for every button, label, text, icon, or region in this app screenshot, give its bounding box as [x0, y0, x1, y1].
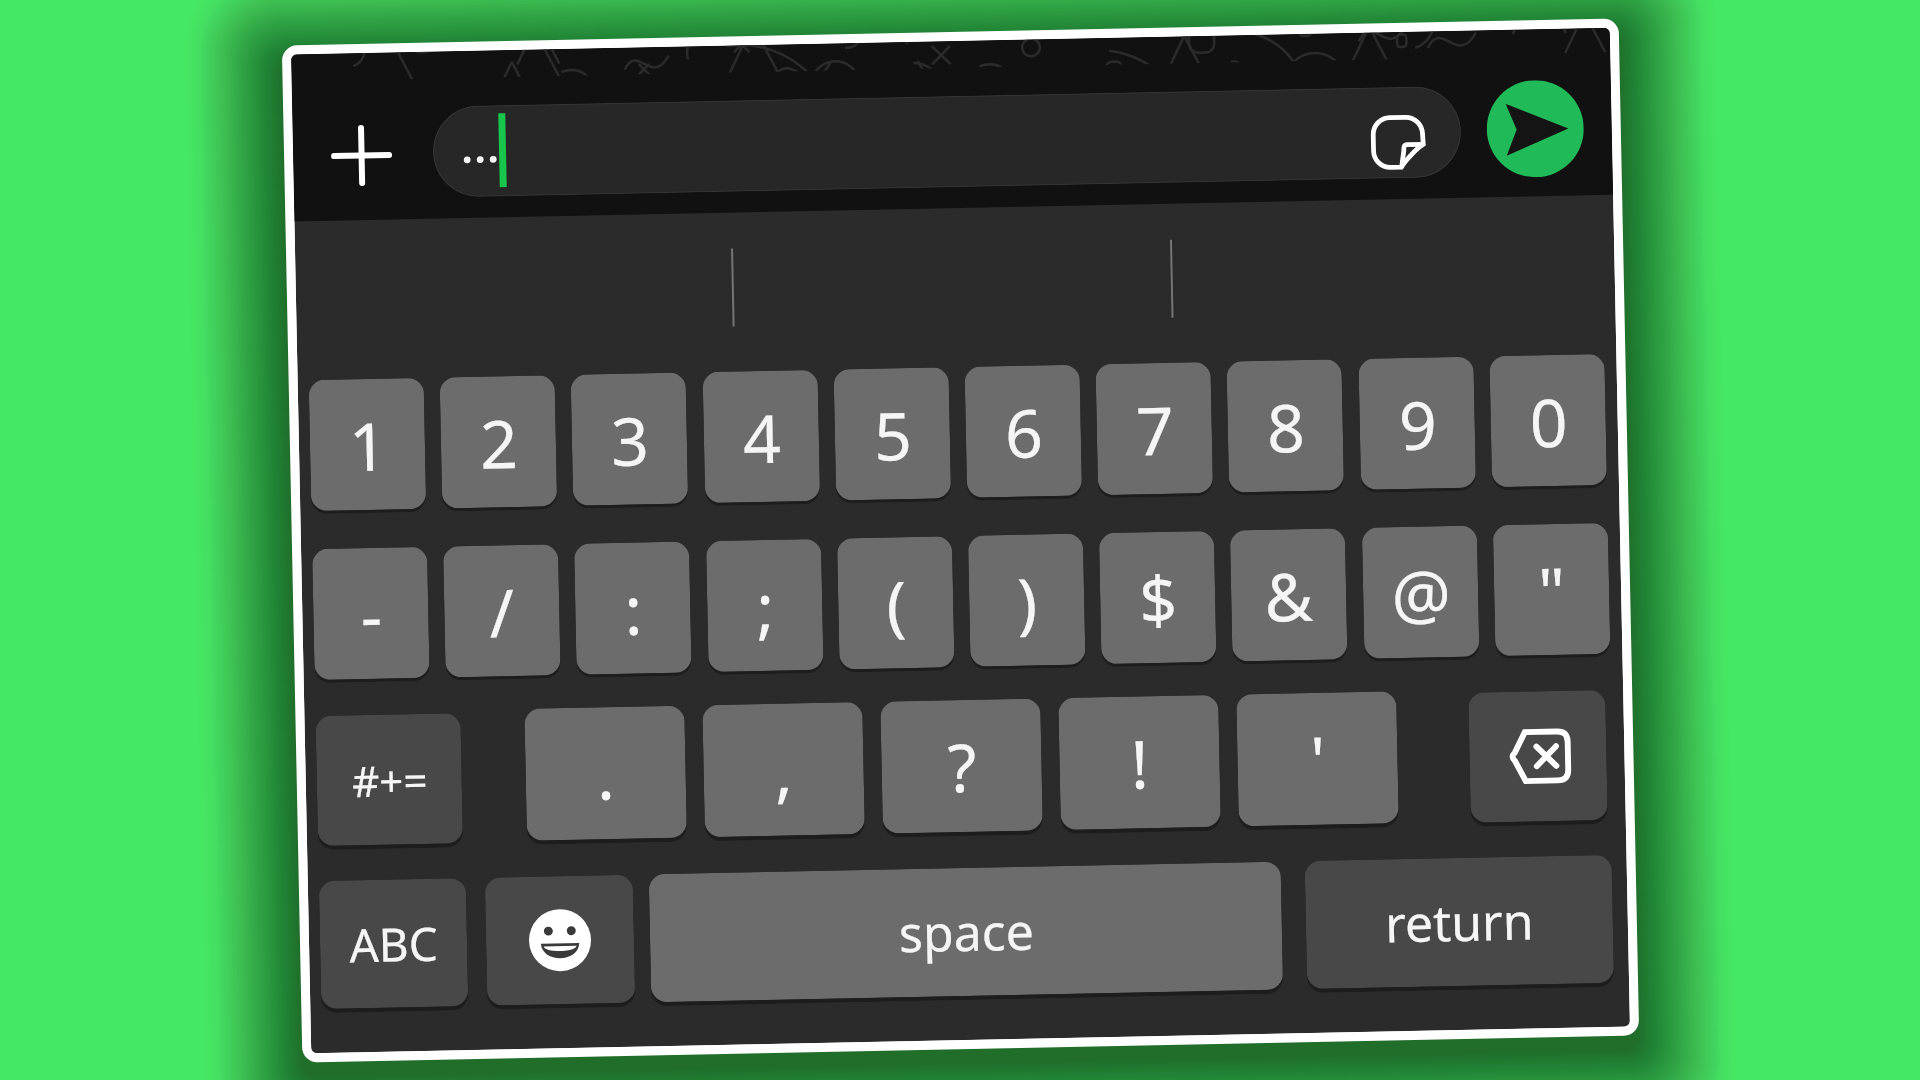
- button[interactable]: 6: [964, 365, 1082, 498]
- button[interactable]: @: [1362, 525, 1479, 659]
- button[interactable]: 7: [1095, 362, 1213, 495]
- staticText: 6: [1004, 386, 1044, 477]
- button[interactable]: :: [574, 541, 692, 675]
- staticText: 2: [479, 397, 519, 488]
- button[interactable]: #+=: [315, 713, 463, 846]
- button[interactable]: return: [1305, 855, 1614, 989]
- button[interactable]: 0: [1489, 354, 1607, 487]
- staticText: ': [1310, 714, 1326, 804]
- button[interactable]: 9: [1358, 357, 1476, 490]
- staticText: ;: [755, 561, 775, 651]
- staticText: (: [885, 558, 907, 648]
- staticText: 1: [348, 400, 388, 490]
- staticText: .: [596, 728, 615, 818]
- staticText: ,: [774, 724, 793, 815]
- staticText: 5: [873, 389, 913, 480]
- staticText: 9: [1398, 378, 1438, 469]
- button[interactable]: ,: [702, 702, 865, 837]
- button[interactable]: space: [649, 862, 1283, 1002]
- staticText: :: [623, 563, 643, 654]
- button[interactable]: 1: [309, 378, 426, 511]
- button[interactable]: &: [1230, 528, 1347, 661]
- button[interactable]: 2: [440, 375, 557, 508]
- button[interactable]: ;: [706, 539, 824, 672]
- button[interactable]: !: [1058, 695, 1221, 830]
- staticText: $: [1138, 553, 1178, 643]
- button[interactable]: Send: [1486, 79, 1585, 178]
- button[interactable]: .: [524, 706, 687, 841]
- staticText: ABC: [348, 912, 439, 976]
- button[interactable]: Sticker: [432, 86, 1462, 198]
- button[interactable]: 5: [833, 367, 951, 500]
- staticText: #+=: [351, 751, 428, 809]
- button[interactable]: ?: [880, 698, 1043, 834]
- staticText: @: [1390, 547, 1452, 638]
- button[interactable]: ): [968, 533, 1085, 667]
- button[interactable]: Sticker: [1369, 113, 1427, 171]
- button[interactable]: Attach: [315, 109, 407, 201]
- button[interactable]: 4: [702, 370, 820, 503]
- staticText: 0: [1529, 376, 1569, 466]
- staticText: ): [1016, 555, 1038, 646]
- staticText: -: [359, 569, 383, 659]
- button[interactable]: 8: [1226, 359, 1344, 493]
- button[interactable]: -: [312, 547, 430, 680]
- button[interactable]: /: [443, 544, 561, 677]
- button[interactable]: ABC: [319, 878, 468, 1009]
- staticText: ": [1537, 545, 1566, 635]
- staticText: 4: [742, 392, 782, 482]
- staticText: return: [1384, 886, 1534, 957]
- button[interactable]: (: [837, 536, 954, 669]
- button[interactable]: ': [1236, 691, 1399, 826]
- staticText: !: [1130, 717, 1149, 807]
- button[interactable]: ": [1493, 523, 1610, 656]
- staticText: 3: [610, 394, 650, 485]
- button[interactable]: Backspace: [1468, 690, 1608, 823]
- staticText: space: [898, 897, 1035, 967]
- staticText: 8: [1266, 381, 1306, 472]
- staticText: &: [1263, 550, 1314, 641]
- button[interactable]: 3: [571, 372, 688, 506]
- staticText: ?: [947, 721, 977, 811]
- button[interactable]: Emoji: [485, 875, 635, 1006]
- button[interactable]: $: [1099, 531, 1216, 664]
- staticText: 7: [1135, 384, 1175, 474]
- staticText: /: [488, 566, 515, 657]
